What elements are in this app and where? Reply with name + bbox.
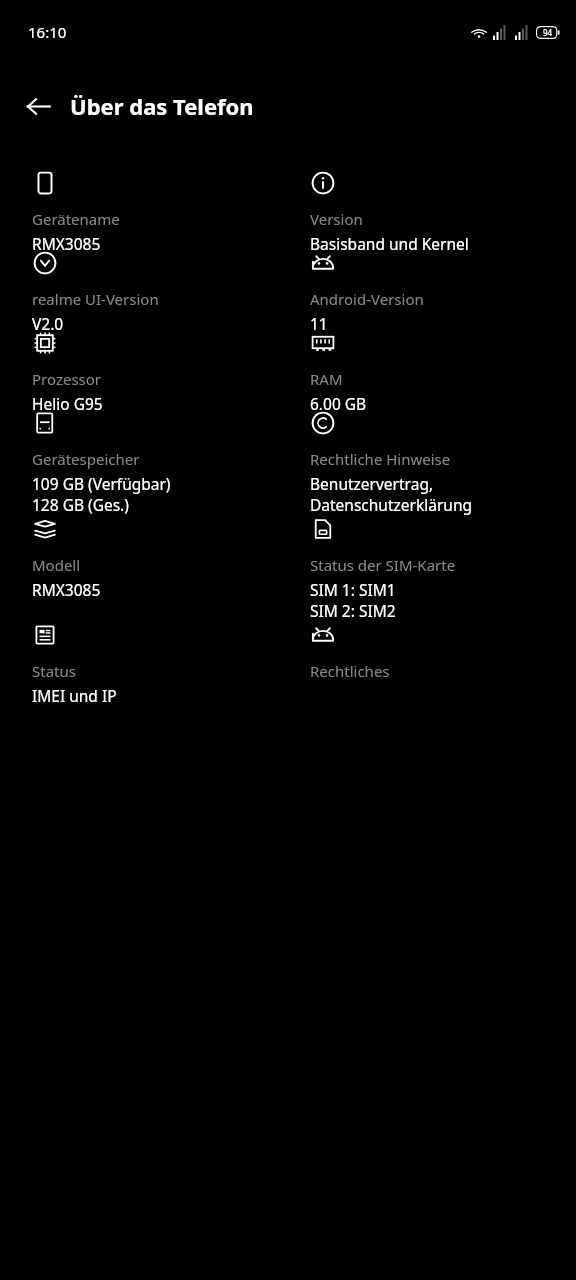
button[interactable]: Gerätespeicher <box>0 410 288 516</box>
button[interactable]: realme UI-Version <box>0 250 288 330</box>
staticText: V2.0 <box>32 313 64 330</box>
staticText: RMX3085 <box>32 579 101 600</box>
staticText: Rechtliche Hinweise <box>310 449 451 469</box>
staticText: Helio G95 <box>32 393 103 410</box>
staticText: 11 <box>310 313 328 330</box>
staticText: Status <box>32 661 76 681</box>
staticText: 94 <box>543 27 553 38</box>
button[interactable]: Rechtliche Hinweise <box>288 410 576 516</box>
staticText: SIM 2: SIM2 <box>310 600 396 621</box>
button[interactable]: Zurück <box>12 80 64 132</box>
staticText: 128 GB (Ges.) <box>32 494 129 515</box>
staticText: SIM 1: SIM1 <box>310 579 396 600</box>
staticText: Modell <box>32 555 81 575</box>
staticText: IMEI und IP <box>32 685 117 702</box>
staticText: Basisband und Kernel <box>310 233 469 250</box>
staticText: 16:10 <box>28 22 67 42</box>
button[interactable]: Prozessor <box>0 330 288 410</box>
button[interactable]: Rechtliches <box>288 622 576 702</box>
staticText: 109 GB (Verfügbar) <box>32 473 171 494</box>
staticText: Über das Telefon <box>70 91 254 121</box>
staticText: Datenschutzerklärung <box>310 494 473 515</box>
staticText: 6,00 GB <box>310 393 367 410</box>
button[interactable]: Version <box>288 170 576 250</box>
button[interactable]: Status der SIM-Karte <box>288 516 576 622</box>
staticText: realme UI-Version <box>32 289 159 309</box>
staticText: RMX3085 <box>32 233 101 250</box>
staticText: Gerätespeicher <box>32 449 140 469</box>
staticText: RAM <box>310 369 343 389</box>
staticText: Prozessor <box>32 369 102 389</box>
staticText: Gerätename <box>32 209 120 229</box>
staticText: Android-Version <box>310 289 424 309</box>
button[interactable]: Status <box>0 622 288 702</box>
staticText: Benutzervertrag, <box>310 473 434 494</box>
button[interactable]: Modell <box>0 516 288 622</box>
button[interactable]: Android-Version <box>288 250 576 330</box>
staticText: Version <box>310 209 363 229</box>
button[interactable]: RAM <box>288 330 576 410</box>
staticText: Rechtliches <box>310 661 390 681</box>
staticText: Status der SIM-Karte <box>310 555 456 575</box>
button[interactable]: Gerätename <box>0 170 288 250</box>
